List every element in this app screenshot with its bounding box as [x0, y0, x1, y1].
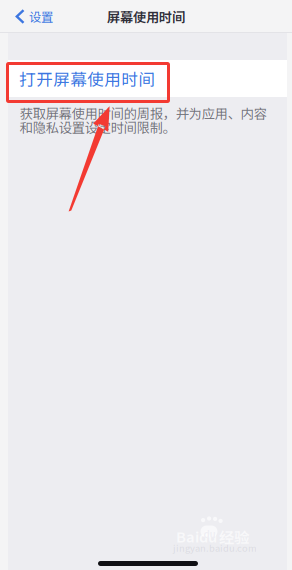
- staticText: 和隐私设置设定时间限制。: [20, 117, 176, 137]
- staticText: jingyan.baidu.com: [173, 541, 257, 554]
- staticText: 设置: [29, 8, 53, 25]
- staticText: Baidu: [176, 525, 217, 547]
- button[interactable]: 设置: [0, 0, 63, 33]
- staticText: 获取屏幕使用时间的周报，并为应用、内容: [20, 103, 267, 123]
- staticText: 经验: [219, 525, 249, 548]
- staticText: du: [203, 526, 215, 541]
- staticText: 屏幕使用时间: [107, 7, 185, 26]
- button[interactable]: 打开屏幕使用时间: [8, 60, 287, 97]
- staticText: 打开屏幕使用时间: [19, 66, 155, 90]
